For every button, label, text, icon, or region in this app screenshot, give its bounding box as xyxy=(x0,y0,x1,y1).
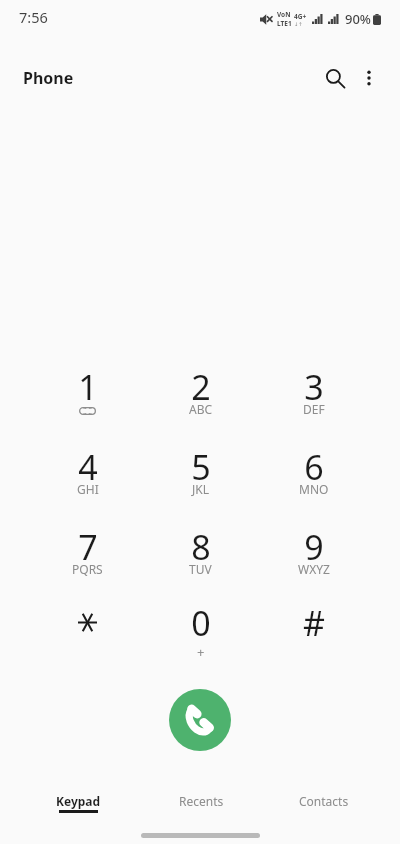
button[interactable]: Recents xyxy=(141,786,261,820)
button[interactable]: Search xyxy=(313,56,357,100)
staticText: Recents xyxy=(179,793,224,809)
button[interactable]: More options xyxy=(347,56,391,100)
button[interactable]: Key 3 xyxy=(257,349,370,427)
staticText: 3 xyxy=(304,364,324,410)
button[interactable]: Key 2 xyxy=(144,349,257,427)
staticText: Keypad xyxy=(56,793,101,809)
staticText: GHI xyxy=(77,481,99,497)
button[interactable]: Key 5 xyxy=(144,429,257,507)
staticText: LTE1 xyxy=(277,19,292,28)
staticText: 4G+ xyxy=(294,12,307,21)
staticText: 0 xyxy=(191,600,211,646)
staticText: Contacts xyxy=(299,793,349,809)
button[interactable]: Key 6 xyxy=(257,429,370,507)
staticText: 2 xyxy=(191,364,211,410)
staticText: # xyxy=(303,600,325,646)
staticText: 8 xyxy=(191,524,211,570)
staticText: + xyxy=(197,643,205,661)
staticText: VoN xyxy=(277,10,291,19)
staticText: JKL xyxy=(192,481,209,497)
staticText: 9 xyxy=(304,524,324,570)
button[interactable]: Key 9 xyxy=(257,509,370,587)
staticText: ↓↑ xyxy=(294,21,303,27)
staticText: Phone xyxy=(23,67,74,89)
staticText: 6 xyxy=(304,444,324,490)
staticText: ABC xyxy=(189,401,213,417)
staticText: 4 xyxy=(78,444,98,490)
button[interactable]: Key 7 xyxy=(31,509,144,587)
button[interactable]: Key 8 xyxy=(144,509,257,587)
staticText: 7 xyxy=(78,524,98,570)
staticText: DEF xyxy=(303,401,325,417)
button[interactable]: Call xyxy=(169,689,231,751)
button[interactable]: Key 0 xyxy=(144,585,257,663)
button[interactable]: Key 4 xyxy=(31,429,144,507)
staticText: 7:56 xyxy=(19,7,48,27)
staticText: TUV xyxy=(189,561,212,577)
staticText: WXYZ xyxy=(298,561,330,577)
button[interactable]: Contacts xyxy=(264,786,384,820)
staticText: 90% xyxy=(345,10,371,28)
button[interactable]: Key 1 xyxy=(31,349,144,427)
button[interactable]: Key * xyxy=(31,585,144,663)
staticText: PQRS xyxy=(72,561,103,577)
staticText: 5 xyxy=(191,444,211,490)
staticText: 1 xyxy=(78,364,98,410)
button[interactable]: Keypad xyxy=(18,786,138,820)
staticText: MNO xyxy=(299,481,329,497)
button[interactable]: Key # xyxy=(257,585,370,663)
